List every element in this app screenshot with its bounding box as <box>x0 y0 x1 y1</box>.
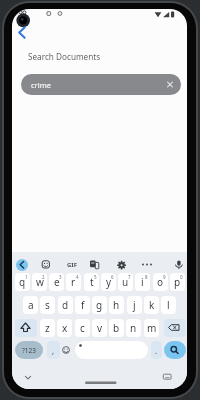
button[interactable]: y <box>101 273 116 291</box>
button[interactable]: ?123 <box>15 341 43 359</box>
staticText: q <box>19 275 26 289</box>
staticText: d <box>62 298 69 312</box>
button[interactable] <box>15 319 37 337</box>
button[interactable]: e <box>49 273 64 291</box>
staticText: crime <box>31 80 51 90</box>
staticText: ?123 <box>22 346 36 355</box>
staticText: 6 <box>111 274 114 280</box>
button[interactable]: z <box>40 319 55 337</box>
staticText: h <box>113 298 120 312</box>
staticText: c <box>80 321 85 335</box>
staticText: 9 <box>163 274 166 280</box>
button[interactable]: m <box>144 319 159 337</box>
button[interactable]: c <box>75 319 90 337</box>
staticText: , <box>52 345 55 356</box>
staticText: k <box>149 298 155 312</box>
staticText: 0 <box>180 274 183 280</box>
staticText: n <box>130 321 137 335</box>
staticText: 4 <box>76 274 79 280</box>
staticText: r <box>71 275 76 289</box>
staticText: v <box>97 321 103 335</box>
staticText: . <box>155 345 158 356</box>
button[interactable]: v <box>92 319 107 337</box>
staticText: b <box>113 321 120 335</box>
staticText: 7 <box>128 274 131 280</box>
button[interactable]: a <box>23 296 38 314</box>
button[interactable]: , <box>47 341 60 359</box>
button[interactable]: p <box>170 273 185 291</box>
button[interactable]: r <box>66 273 81 291</box>
staticText: 5 <box>94 274 97 280</box>
button[interactable]: q <box>15 273 30 291</box>
button[interactable] <box>164 341 186 359</box>
button[interactable]: h <box>109 296 124 314</box>
staticText: a <box>28 298 34 312</box>
staticText: z <box>45 321 50 335</box>
button[interactable]: crime <box>21 74 181 95</box>
staticText: w <box>36 275 44 289</box>
button[interactable]: . <box>151 341 162 359</box>
button[interactable] <box>16 259 28 271</box>
button[interactable]: u <box>118 273 133 291</box>
button[interactable]: g <box>92 296 107 314</box>
button[interactable]: b <box>109 319 124 337</box>
staticText: 8 <box>145 274 148 280</box>
staticText: i <box>141 275 144 289</box>
button[interactable]: f <box>75 296 90 314</box>
staticText: t <box>90 275 94 289</box>
staticText: 3 <box>59 274 62 280</box>
button[interactable] <box>75 341 148 359</box>
staticText: j <box>133 298 136 312</box>
button[interactable]: s <box>40 296 55 314</box>
staticText: y <box>106 275 112 289</box>
button[interactable]: i <box>135 273 150 291</box>
button[interactable]: x <box>57 319 72 337</box>
staticText: p <box>174 275 181 289</box>
staticText: s <box>45 298 50 312</box>
button[interactable]: l <box>161 296 176 314</box>
staticText: l <box>167 298 170 312</box>
button[interactable]: n <box>126 319 141 337</box>
staticText: e <box>54 275 60 289</box>
button[interactable]: d <box>58 296 73 314</box>
staticText: Search Documents <box>28 51 101 62</box>
staticText: x <box>62 321 68 335</box>
button[interactable]: o <box>153 273 168 291</box>
button[interactable]: w <box>32 273 47 291</box>
staticText: GIF <box>67 261 77 269</box>
staticText: g <box>96 298 103 312</box>
button[interactable]: j <box>127 296 142 314</box>
button[interactable]: t <box>84 273 99 291</box>
staticText: m <box>147 321 157 335</box>
button[interactable]: k <box>144 296 159 314</box>
button[interactable] <box>164 319 186 337</box>
staticText: u <box>122 275 129 289</box>
staticText: 2 <box>42 274 45 280</box>
staticText: 1 <box>25 274 28 280</box>
staticText: f <box>81 298 85 312</box>
staticText: o <box>157 275 164 289</box>
